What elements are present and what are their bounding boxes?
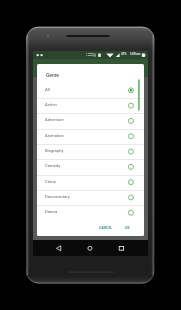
staticText: Adventure — [45, 117, 64, 122]
button[interactable]: Crime — [37, 175, 144, 190]
staticText: Biography — [45, 148, 64, 153]
staticText: Comedy — [45, 163, 61, 168]
staticText: 1.20K/s — [86, 54, 95, 57]
button[interactable]: Recent apps — [119, 246, 124, 251]
staticText: Crime — [45, 179, 56, 184]
button[interactable]: CANCEL — [96, 222, 115, 233]
button[interactable]: Action — [37, 98, 144, 113]
staticText: Drama — [45, 209, 58, 214]
staticText: Genre — [46, 72, 59, 78]
button[interactable]: Drama — [37, 205, 144, 220]
staticText: CANCEL — [99, 226, 113, 230]
staticText: Action — [45, 102, 57, 107]
button[interactable]: Biography — [37, 144, 144, 159]
button[interactable]: Adventure — [37, 113, 144, 128]
staticText: 1:08 am — [130, 52, 141, 55]
staticText: All — [45, 87, 50, 92]
button[interactable]: Comedy — [37, 159, 144, 174]
staticText: Animation — [45, 133, 64, 138]
staticText: Documentary — [45, 194, 70, 199]
staticText: 1.00K/s — [86, 52, 95, 55]
button[interactable]: OK — [122, 222, 133, 233]
staticText: 47% — [121, 52, 127, 55]
button[interactable]: Back — [57, 246, 62, 251]
button[interactable]: Animation — [37, 129, 144, 144]
button[interactable]: All — [37, 83, 144, 98]
button[interactable]: Home — [87, 246, 92, 251]
button[interactable]: Documentary — [37, 190, 144, 205]
staticText: OK — [125, 226, 130, 230]
